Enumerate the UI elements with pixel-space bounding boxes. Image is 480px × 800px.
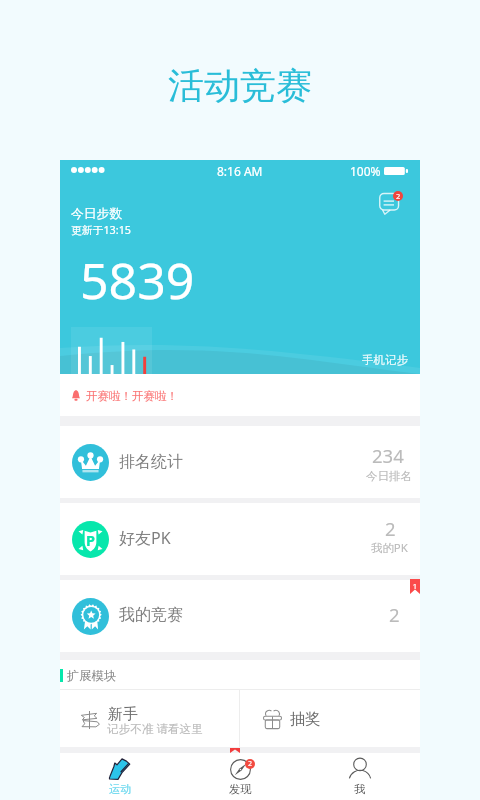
staticText: 我的PK [371, 540, 408, 556]
staticText: 2 [396, 191, 401, 201]
staticText: 5839 [80, 246, 195, 314]
staticText: 好友PK [119, 527, 171, 549]
staticText: 发现 [229, 782, 252, 796]
staticText: 新手 [108, 705, 138, 724]
staticText: 2 [389, 602, 400, 627]
staticText: 活动竞赛 [168, 63, 312, 108]
staticText: 234 [372, 443, 404, 468]
button[interactable]: 2 [180, 753, 300, 800]
staticText: 扩展模块 [67, 668, 117, 683]
button[interactable]: 新手 [60, 690, 239, 747]
button[interactable]: P [60, 503, 420, 575]
staticText: 记步不准 请看这里 [107, 721, 203, 737]
staticText: 开赛啦！开赛啦！ [86, 389, 178, 403]
staticText: 手机记步 [362, 353, 408, 367]
staticText: 2 [248, 759, 253, 769]
button[interactable]: 我的竞赛 [60, 580, 420, 652]
staticText: P [86, 530, 96, 550]
button[interactable]: 开赛啦！开赛啦！ [60, 374, 420, 416]
staticText: 8:16 AM [217, 163, 263, 179]
staticText: 运动 [109, 782, 132, 796]
staticText: 我的竞赛 [119, 605, 183, 625]
staticText: 抽奖 [290, 709, 321, 728]
staticText: 100% [350, 163, 381, 179]
button[interactable]: 运动 [60, 753, 180, 800]
staticText: 排名统计 [119, 452, 183, 472]
staticText: 我 [354, 782, 366, 796]
staticText: 2 [385, 516, 396, 541]
staticText: 1 [410, 581, 420, 591]
button[interactable]: 排名统计 [60, 426, 420, 498]
button[interactable]: Messages [379, 192, 401, 215]
staticText: 更新于13:15 [71, 222, 131, 237]
button[interactable]: 我 [300, 753, 420, 800]
staticText: 今日步数 [71, 206, 123, 222]
button[interactable]: 抽奖 [240, 690, 420, 747]
staticText: 今日排名 [366, 469, 412, 483]
